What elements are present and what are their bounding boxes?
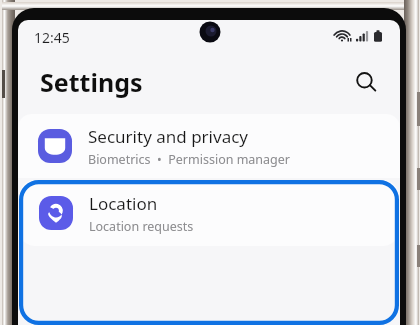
staticText: 12:45 — [34, 28, 70, 47]
staticText: Location requests — [89, 218, 194, 235]
button[interactable]: Search — [346, 62, 386, 102]
staticText: Security and privacy — [88, 125, 249, 148]
button[interactable]: Security and privacy — [18, 114, 400, 178]
button[interactable]: Location — [19, 180, 399, 246]
staticText: Biometrics • Permission manager — [88, 151, 291, 168]
staticText: Settings — [40, 65, 143, 99]
staticText: Location — [89, 192, 158, 215]
